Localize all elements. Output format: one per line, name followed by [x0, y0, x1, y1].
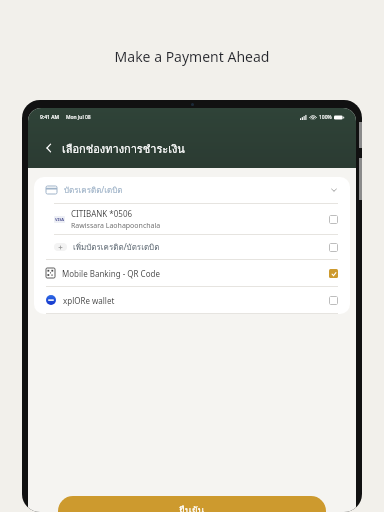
staticText: xplORe wallet [63, 295, 115, 306]
staticText: Make a Payment Ahead [0, 47, 384, 66]
staticText: Mon Jul 08 [66, 114, 91, 121]
staticText: CITIBANK *0506 [71, 208, 133, 219]
staticText: เพิ่มบัตรเครดิต/บัตรเดบิต [73, 241, 160, 254]
staticText: Mobile Banking - QR Code [62, 268, 160, 279]
staticText: เลือกช่องทางการชำระเงิน [62, 140, 185, 157]
button[interactable]: xplORe wallet [34, 287, 350, 313]
button[interactable]: Back [38, 137, 60, 159]
button[interactable]: ยืนยัน [58, 496, 326, 512]
staticText: 100% [319, 114, 332, 121]
staticText: บัตรเครดิต/เดบิต [64, 184, 123, 197]
button[interactable]: บัตรเครดิต/เดบิต [34, 177, 350, 203]
staticText: ยืนยัน [179, 503, 205, 512]
staticText: Rawissara Laohapoonchala [71, 221, 161, 231]
button[interactable]: VISA [34, 204, 350, 234]
staticText: VISA [55, 217, 65, 222]
staticText: 9:41 AM [40, 114, 60, 121]
button[interactable]: Mobile Banking - QR Code [34, 260, 350, 286]
button[interactable]: เพิ่มบัตรเครดิต/บัตรเดบิต [34, 235, 350, 259]
